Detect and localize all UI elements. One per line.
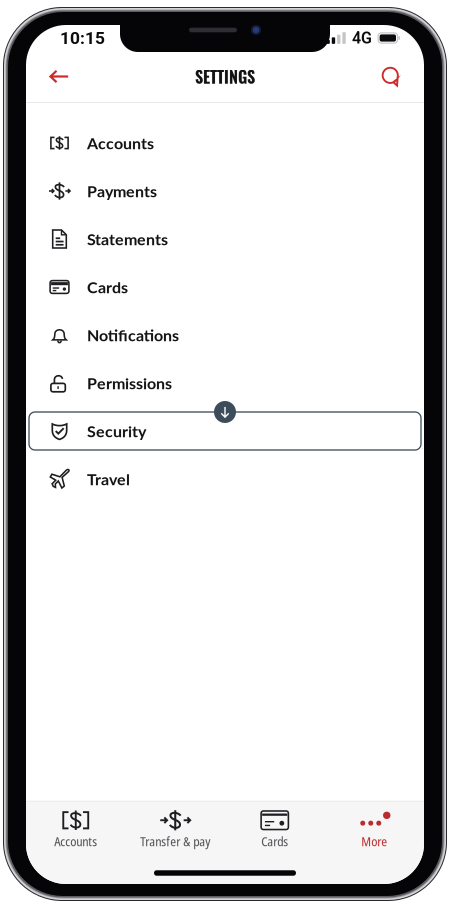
- button[interactable]: Cards: [29, 268, 421, 306]
- button[interactable]: Notifications: [29, 316, 421, 354]
- staticText: Payments: [87, 181, 157, 201]
- staticText: Cards: [87, 277, 128, 297]
- staticText: Statements: [87, 229, 168, 249]
- staticText: Travel: [87, 469, 130, 489]
- staticText: Accounts: [87, 133, 154, 153]
- staticText: 10:15: [60, 28, 105, 48]
- staticText: Security: [87, 421, 146, 441]
- button[interactable]: Statements: [29, 220, 421, 258]
- button[interactable]: Travel: [29, 460, 421, 498]
- staticText: More: [361, 833, 387, 850]
- staticText: Transfer & pay: [140, 833, 210, 850]
- button[interactable]: Cards: [225, 802, 324, 860]
- button[interactable]: Security: [29, 412, 421, 450]
- button[interactable]: Accounts: [29, 124, 421, 162]
- staticText: Cards: [261, 833, 288, 850]
- staticText: Accounts: [54, 833, 97, 850]
- button[interactable]: Payments: [29, 172, 421, 210]
- staticText: Permissions: [87, 373, 172, 393]
- button[interactable]: Back: [39, 56, 79, 96]
- staticText: Notifications: [87, 325, 179, 345]
- button[interactable]: Permissions: [29, 364, 421, 402]
- button[interactable]: Chat: [371, 56, 411, 96]
- button[interactable]: Transfer & pay: [125, 802, 225, 860]
- button[interactable]: Accounts: [26, 802, 125, 860]
- staticText: SETTINGS: [195, 65, 255, 88]
- staticText: 4G: [352, 29, 372, 47]
- button[interactable]: More: [324, 802, 424, 860]
